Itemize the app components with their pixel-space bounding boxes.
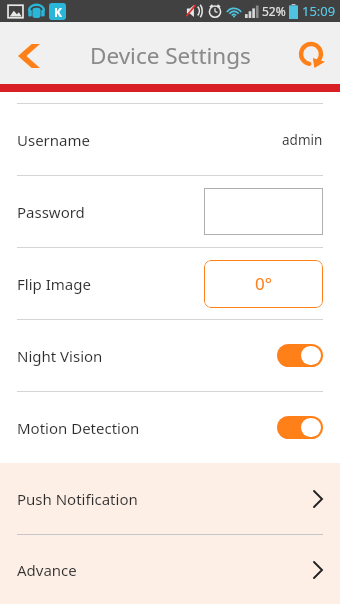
staticText: Motion Detection [17,418,140,438]
staticText: Password [17,202,85,222]
staticText: Flip Image [17,274,91,294]
staticText: 15:09 [302,2,336,20]
button[interactable]: Flip Image [0,248,340,319]
staticText: Advance [17,560,77,580]
button[interactable]: Motion Detection [0,392,340,463]
staticText: 0° [255,272,272,295]
staticText: 52% [262,3,286,19]
staticText: Push Notification [17,489,138,509]
button[interactable]: Refresh [284,22,340,84]
staticText: Night Vision [17,346,103,366]
button[interactable]: Night Vision [0,320,340,391]
button[interactable]: Night Vision on [277,344,323,367]
button[interactable]: Advance [0,535,340,604]
staticText: K [54,4,62,20]
button[interactable]: Username [0,104,340,175]
button[interactable]: Back [0,22,60,84]
staticText: Username [17,130,90,150]
staticText: Device Settings [90,40,251,71]
staticText: admin [282,131,323,149]
button[interactable]: Password input [204,188,323,235]
button[interactable]: Push Notification [0,463,340,534]
button[interactable]: Password [0,176,340,247]
button[interactable]: Motion Detection on [277,416,323,439]
button[interactable]: 0° [204,260,323,308]
